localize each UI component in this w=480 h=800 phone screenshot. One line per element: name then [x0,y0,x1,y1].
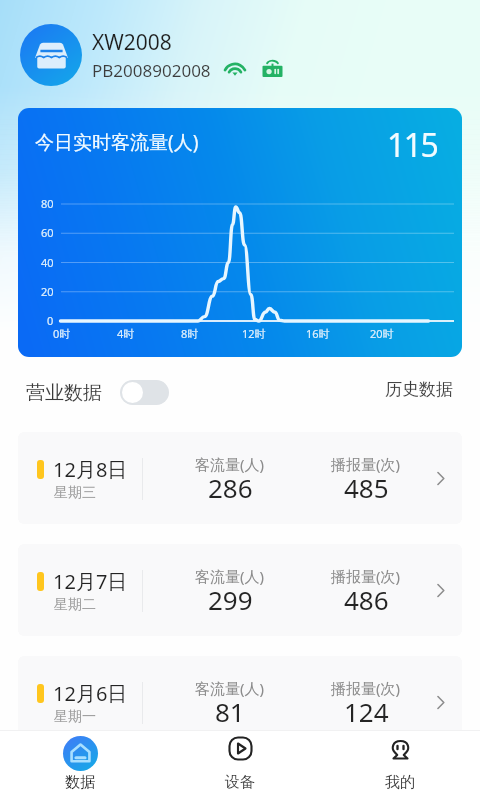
staticText: 4时 [117,326,135,341]
staticText: 486 [344,582,389,617]
staticText: 营业数据 [26,381,102,405]
staticText: 星期三 [54,484,96,502]
staticText: 20 [41,284,54,299]
staticText: 12月8日 [53,456,128,483]
button[interactable]: Business data toggle [120,380,169,405]
button[interactable]: 历史数据 [381,375,457,404]
staticText: 16时 [306,326,330,341]
staticText: 80 [41,196,54,211]
staticText: 设备 [225,773,255,792]
other: Device online [261,57,284,79]
staticText: 历史数据 [385,379,453,400]
staticText: 数据 [65,773,95,792]
button[interactable]: Store avatar [20,24,82,86]
staticText: 299 [208,582,253,617]
staticText: 286 [208,470,253,505]
staticText: 12时 [242,326,266,341]
staticText: 60 [41,225,54,240]
staticText: 播报量(次) [331,454,401,474]
staticText: 81 [215,694,245,729]
staticText: 20时 [370,326,394,341]
button[interactable]: 12月6日 [18,656,462,730]
staticText: 12月6日 [53,680,128,707]
staticText: 124 [344,694,389,729]
button[interactable]: 设备 [200,730,280,800]
other: WiFi connected [222,58,248,78]
staticText: 星期一 [54,708,96,726]
button[interactable]: 我的 [360,730,440,800]
staticText: 0 [47,313,54,328]
button[interactable]: 数据 [40,730,120,800]
staticText: 12月7日 [53,568,128,595]
button[interactable]: 12月8日 [18,432,462,524]
staticText: 客流量(人) [195,678,265,698]
staticText: 我的 [385,773,415,792]
staticText: 115 [387,123,438,167]
staticText: XW2008 [92,28,172,57]
staticText: 客流量(人) [195,566,265,586]
staticText: 播报量(次) [331,678,401,698]
staticText: 客流量(人) [195,454,265,474]
staticText: 0时 [53,326,71,341]
staticText: 8时 [181,326,199,341]
button[interactable]: 12月7日 [18,544,462,636]
staticText: 播报量(次) [331,566,401,586]
staticText: 星期二 [54,596,96,614]
staticText: 40 [41,255,54,270]
staticText: PB2008902008 [92,59,211,82]
staticText: 485 [344,470,389,505]
staticText: 今日实时客流量(人) [35,129,199,155]
